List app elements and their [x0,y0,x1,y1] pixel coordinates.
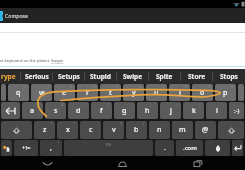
button[interactable]: x [57,121,78,139]
button[interactable]: Shift [1,121,32,139]
button[interactable]: Shift [218,121,244,139]
staticText: ) [108,102,110,107]
button[interactable]: f [91,102,112,119]
staticText: 8 [185,84,188,89]
staticText: 0 [231,84,234,89]
staticText: k [192,106,196,116]
button[interactable]: rype [0,69,20,84]
staticText: _ [154,102,156,107]
button[interactable]: Stops [213,69,244,84]
staticText: ' [98,121,99,126]
staticText: / [143,121,145,126]
staticText: EN [106,142,112,147]
staticText: 9 [208,84,211,89]
button[interactable]: Recent apps [170,156,225,170]
staticText: + [176,102,179,107]
button[interactable]: h [137,102,158,119]
button[interactable]: q [8,84,29,101]
button[interactable]: y [123,84,144,101]
button[interactable]: v [103,121,124,139]
staticText: 3 [70,84,73,89]
button[interactable]: @ [195,121,216,139]
staticText: : [223,102,225,107]
button[interactable]: Swype settings [1,140,12,156]
button[interactable]: b [126,121,147,139]
staticText: - [131,102,133,107]
button[interactable]: , [40,140,62,156]
staticText: @ [202,125,209,135]
button[interactable]: Setups [53,69,84,84]
button[interactable]: Tab [1,84,6,101]
staticText: ! [51,121,53,126]
staticText: j [170,106,172,116]
button[interactable]: z [34,121,55,139]
button[interactable]: Space [64,140,153,156]
button[interactable]: d [68,102,89,119]
staticText: u [154,88,159,98]
staticText: t [109,88,112,98]
staticText: d [76,106,81,116]
button[interactable]: r [77,84,98,101]
staticText: e [62,88,67,98]
button[interactable]: Store [181,69,212,84]
staticText: Swipe [123,72,143,81]
staticText: Compose [5,12,29,19]
staticText: . [164,143,166,153]
button[interactable]: i [169,84,190,101]
button[interactable]: l [206,102,227,119]
button[interactable]: c [80,121,101,139]
staticText: ? [120,121,122,126]
button[interactable]: :-) [229,102,244,119]
button[interactable]: Backspace [1,102,20,119]
button[interactable]: p [215,84,236,101]
staticText: y [132,88,136,98]
button[interactable]: s [45,102,66,119]
button[interactable]: k [183,102,204,119]
button[interactable]: e [54,84,75,101]
button[interactable]: Swipe [117,69,148,84]
staticText: a [30,106,35,116]
staticText: 6 [139,84,142,89]
staticText: o [200,88,205,98]
button[interactable]: Hide keyboard [20,156,75,170]
button[interactable]: j [160,102,181,119]
staticText: .com [183,144,197,152]
staticText: i [179,88,181,98]
button[interactable]: u [146,84,167,101]
staticText: 5 [116,84,119,89]
staticText: f [100,106,103,116]
staticText: z [43,125,47,135]
button[interactable]: Spite [149,69,180,84]
button[interactable]: Home [95,156,150,170]
button[interactable]: More [238,84,244,101]
button[interactable]: o [192,84,213,101]
button[interactable]: +!= [14,140,38,156]
staticText: Spite [156,72,173,81]
staticText: w [39,88,45,98]
staticText: p [223,88,228,98]
button[interactable]: . [155,140,174,156]
button[interactable]: n [149,121,170,139]
staticText: c [89,125,93,135]
button[interactable]: a [22,102,43,119]
button[interactable]: Enter [232,140,243,156]
button[interactable]: Emoji [205,140,230,156]
button[interactable]: Stupid [85,69,116,84]
staticText: v [112,125,116,135]
button[interactable]: w [31,84,52,101]
staticText: Serious [25,72,49,81]
staticText: Swype [51,58,64,64]
staticText: h [145,106,150,116]
staticText: r [86,88,89,98]
staticText: ! [58,140,60,145]
staticText: :-) [234,107,240,115]
button[interactable]: .com [176,140,203,156]
button[interactable]: Serious [21,69,52,84]
button[interactable]: m [172,121,193,139]
staticText: 1 [24,84,27,89]
button[interactable]: g [114,102,135,119]
staticText: 2 [47,84,50,89]
staticText: rype [1,72,16,81]
button[interactable]: t [100,84,121,101]
staticText: st keyboard on the planet [0,58,51,64]
